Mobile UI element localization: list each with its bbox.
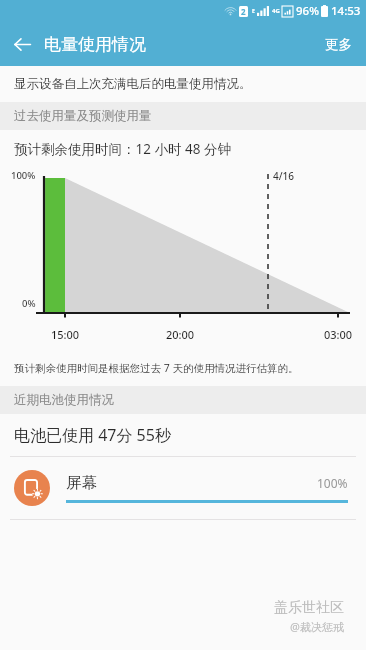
staticText: 显示设备自上次充满电后的电量使用情况。 xyxy=(14,76,252,92)
staticText: @裁决惩戒 xyxy=(290,619,344,634)
staticText: 0% xyxy=(22,297,36,310)
staticText: 96% xyxy=(296,3,319,19)
staticText: 盖乐世社区 xyxy=(274,599,344,617)
staticText: 预计剩余使用时间：12 小时 48 分钟 xyxy=(14,140,231,158)
staticText: 电量使用情况 xyxy=(44,34,146,55)
staticText: 电池已使用 47分 55秒 xyxy=(14,424,171,446)
staticText: 2 xyxy=(241,6,246,17)
staticText: 过去使用量及预测使用量 xyxy=(14,108,152,124)
staticText: 03:00 xyxy=(320,327,356,342)
staticText: 15:00 xyxy=(47,327,83,342)
staticText: E xyxy=(252,8,255,15)
staticText: 4/16 xyxy=(273,169,295,183)
staticText: 14:53 xyxy=(331,3,361,19)
staticText: 100% xyxy=(11,169,36,182)
button[interactable]: Back xyxy=(0,22,44,66)
staticText: 20:00 xyxy=(162,327,198,342)
button[interactable]: 屏幕 xyxy=(0,457,366,519)
staticText: 100% xyxy=(317,475,348,491)
staticText: 屏幕 xyxy=(66,473,317,493)
staticText: 预计剩余使用时间是根据您过去 7 天的使用情况进行估算的。 xyxy=(14,361,299,375)
staticText: 更多 xyxy=(325,36,352,53)
button[interactable]: 更多 xyxy=(311,26,366,63)
staticText: 近期电池使用情况 xyxy=(14,392,114,408)
staticText: 4G xyxy=(272,7,280,15)
